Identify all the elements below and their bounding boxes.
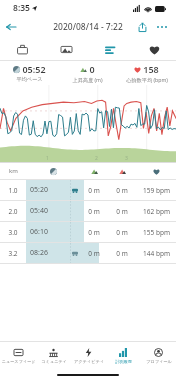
staticText: 1.0	[8, 186, 18, 195]
button[interactable]: More options	[152, 17, 172, 37]
staticText: 上昇高度 (m)	[72, 76, 103, 83]
staticText: 3	[125, 155, 128, 162]
staticText: 162 bpm	[143, 207, 170, 216]
button[interactable]: 2.0	[0, 201, 176, 221]
staticText: 8:35	[13, 2, 30, 14]
staticText: コミュニティ	[41, 359, 67, 364]
staticText: 2	[95, 155, 98, 162]
staticText: 158	[143, 63, 159, 75]
button[interactable]: ニュースフィード	[0, 342, 36, 370]
staticText: 05:52	[22, 63, 46, 75]
button[interactable]: Heart rate	[132, 38, 176, 60]
staticText: 05:40	[30, 206, 48, 216]
staticText: プロフィール	[146, 359, 172, 364]
staticText: 2.0	[8, 207, 18, 216]
button[interactable]: Share	[132, 17, 152, 37]
button[interactable]: 3.2	[0, 243, 176, 263]
button[interactable]: コミュニティ	[36, 342, 71, 370]
button[interactable]: プロフィール	[141, 342, 176, 370]
staticText: 0	[89, 63, 95, 75]
staticText: 0 m	[88, 186, 100, 195]
staticText: ニュースフィード	[1, 359, 36, 364]
staticText: 平均ペース	[16, 76, 43, 83]
staticText: 0 m	[116, 249, 128, 258]
staticText: 計測履歴	[115, 359, 132, 364]
button[interactable]: 1.0	[0, 180, 176, 200]
staticText: 0 m	[88, 228, 100, 237]
staticText: 144 bpm	[143, 249, 170, 258]
staticText: 1	[46, 155, 49, 162]
button[interactable]: Summary	[0, 38, 44, 60]
staticText: 3.2	[8, 249, 18, 258]
button[interactable]: アクティビティ	[71, 342, 106, 370]
button[interactable]: Charts	[88, 38, 132, 60]
staticText: 2020/08/14 - 7:22	[53, 21, 123, 33]
staticText: 心拍数平均 (bpm)	[126, 76, 168, 83]
button[interactable]: Map	[44, 38, 88, 60]
staticText: 159 bpm	[143, 186, 170, 195]
staticText: 0 m	[116, 228, 128, 237]
staticText: 06:10	[30, 227, 48, 237]
button[interactable]: 3.0	[0, 222, 176, 242]
staticText: km	[9, 167, 18, 175]
staticText: 0 m	[116, 186, 128, 195]
staticText: 05:20	[30, 185, 48, 195]
button[interactable]: 計測履歴	[106, 342, 141, 370]
staticText: 3.0	[8, 228, 18, 237]
staticText: 0 m	[88, 207, 100, 216]
staticText: 08:26	[30, 248, 48, 258]
staticText: アクティビティ	[74, 359, 104, 364]
staticText: 0 m	[116, 207, 128, 216]
staticText: 155 bpm	[143, 228, 170, 237]
staticText: 0 m	[88, 249, 100, 258]
button[interactable]: Back	[0, 16, 22, 38]
